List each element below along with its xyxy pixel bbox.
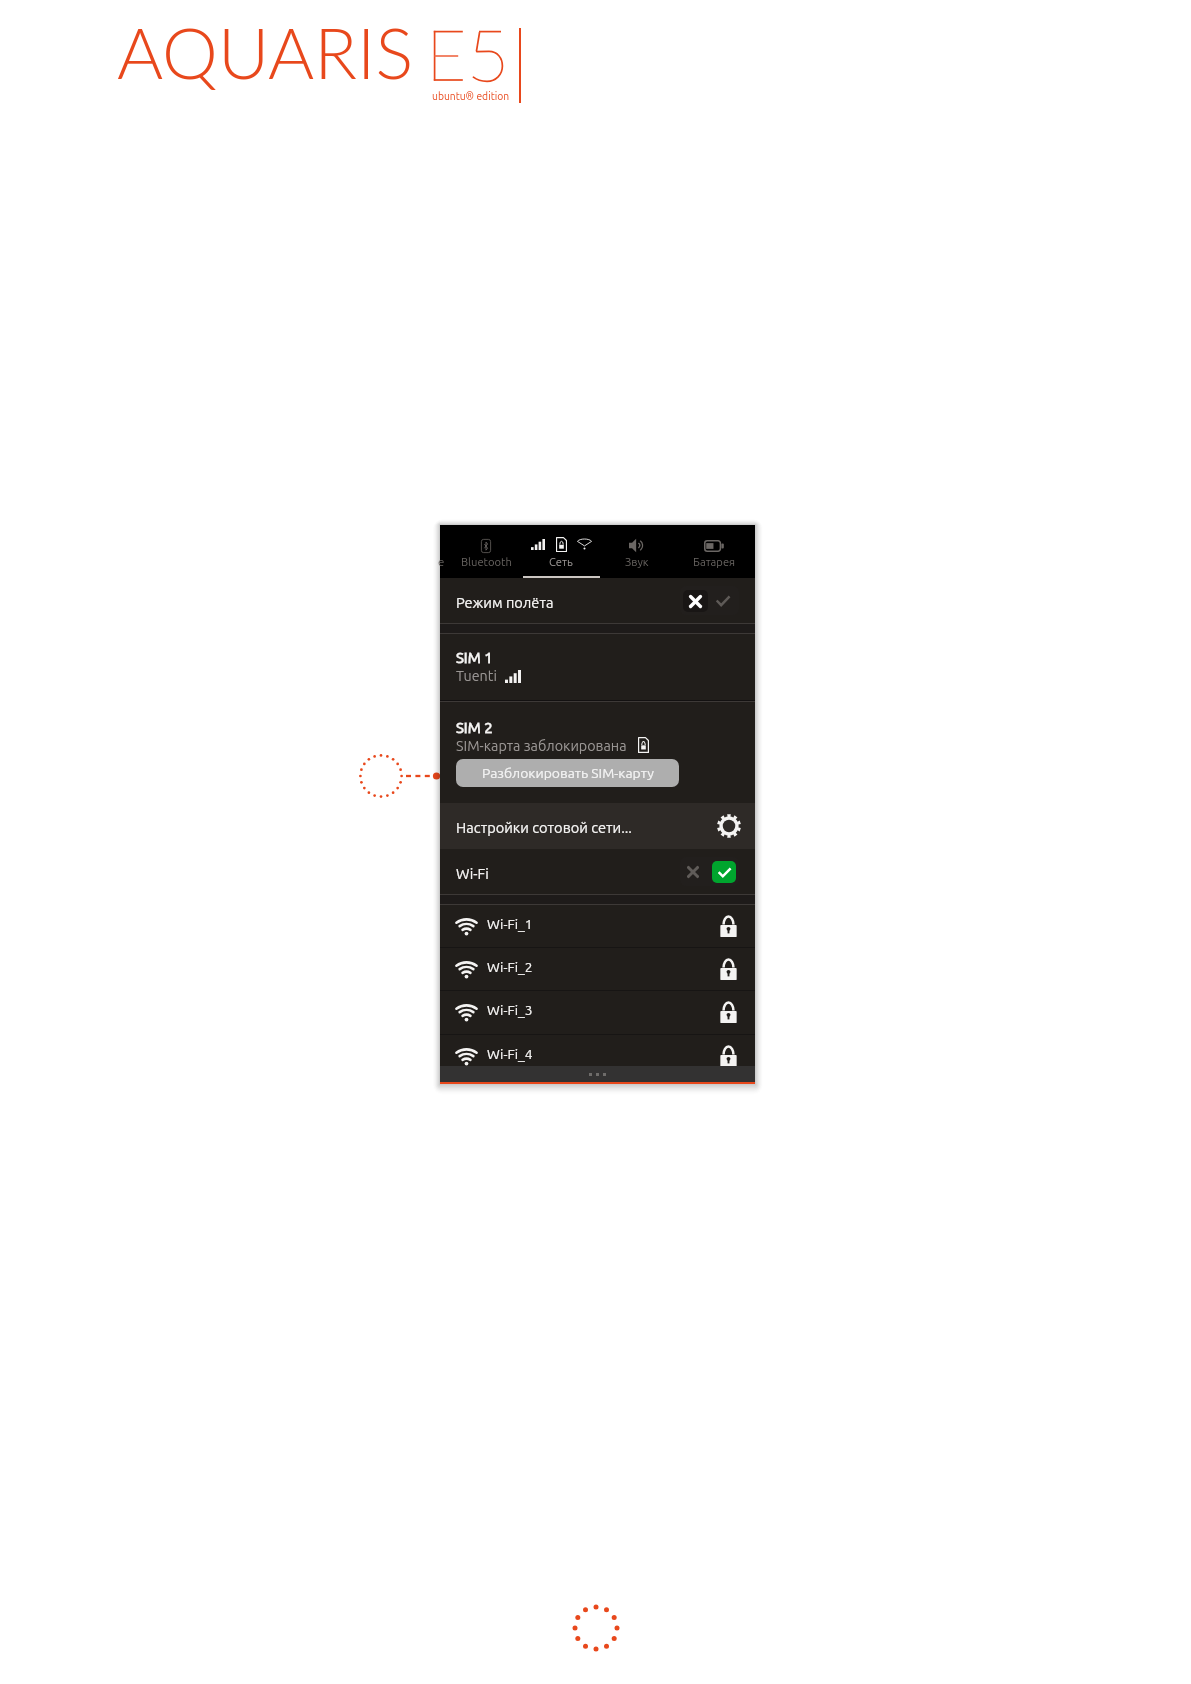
button[interactable]: Wi-Fi_2 xyxy=(440,948,755,990)
other: Secured network xyxy=(720,1045,737,1067)
staticText: Звук xyxy=(625,556,649,569)
staticText: Wi-Fi_4 xyxy=(487,1046,533,1061)
staticText: ubuntu® edition xyxy=(432,90,510,102)
button[interactable]: SIM 2 xyxy=(440,702,755,803)
staticText: Tuenti xyxy=(456,668,497,684)
button[interactable]: Disabled xyxy=(680,586,739,615)
staticText: SIM-карта заблокирована xyxy=(456,738,627,754)
staticText: Настройки сотовой сети... xyxy=(456,819,632,835)
staticText: Bluetooth xyxy=(461,556,512,569)
button[interactable]: SIM 1 xyxy=(440,634,755,700)
other: Secured network xyxy=(720,915,737,937)
staticText: Wi-Fi_2 xyxy=(487,959,533,974)
button[interactable]: Звук xyxy=(599,525,675,578)
staticText: SIM 1 xyxy=(456,649,493,666)
button[interactable]: Wi-Fi_1 xyxy=(440,905,755,947)
other: Cellular settings xyxy=(717,814,741,838)
button[interactable]: Режим полёта xyxy=(440,578,755,623)
staticText: Разблокировать SIM-карту xyxy=(482,765,654,781)
button[interactable]: Wi-Fi xyxy=(440,849,755,894)
button[interactable]: Wi-Fi_3 xyxy=(440,991,755,1034)
other: Secured network xyxy=(720,958,737,980)
staticText: SIM 2 xyxy=(456,719,493,736)
button[interactable]: Батарея xyxy=(676,525,752,578)
staticText: Сеть xyxy=(549,556,573,569)
staticText: Батарея xyxy=(693,556,736,569)
staticText: AQUARIS xyxy=(117,9,414,94)
button[interactable]: Сеть xyxy=(523,525,599,578)
staticText: Режим полёта xyxy=(456,594,554,610)
staticText: e xyxy=(438,555,445,568)
button[interactable]: Enabled xyxy=(680,857,739,886)
button[interactable]: Настройки сотовой сети... xyxy=(440,803,755,849)
staticText: Wi-Fi_3 xyxy=(487,1002,533,1017)
staticText: Wi-Fi xyxy=(456,865,489,881)
button[interactable]: Разблокировать SIM-карту xyxy=(456,759,679,787)
button[interactable]: Wi-Fi_4 xyxy=(440,1035,755,1066)
other: Secured network xyxy=(720,1001,737,1023)
button[interactable]: Bluetooth xyxy=(448,525,524,578)
staticText: Wi-Fi_1 xyxy=(487,916,533,931)
